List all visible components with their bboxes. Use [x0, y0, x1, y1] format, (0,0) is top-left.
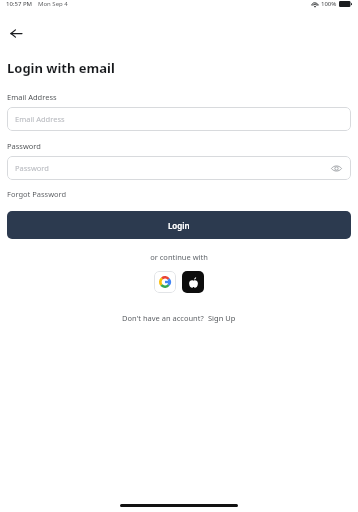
staticText: Forgot Password: [7, 189, 67, 199]
staticText: Mon Sep 4: [38, 0, 68, 8]
staticText: 100%: [321, 0, 337, 8]
staticText: Password: [7, 141, 41, 151]
button[interactable]: Login: [7, 211, 351, 239]
staticText: 10:57 PM: [6, 0, 33, 8]
button[interactable]: Email Address: [7, 107, 351, 131]
button[interactable]: Continue with Google: [154, 271, 176, 293]
button[interactable]: Forgot Password: [7, 189, 67, 199]
staticText: Login with email: [7, 59, 115, 77]
staticText: Email Address: [15, 114, 65, 124]
button[interactable]: Sign Up: [208, 313, 236, 323]
staticText: Don't have an account?: [122, 313, 204, 323]
staticText: Email Address: [7, 92, 57, 102]
staticText: Login: [168, 220, 190, 231]
button[interactable]: Continue with Apple: [182, 271, 204, 293]
staticText: Password: [15, 163, 49, 173]
staticText: or continue with: [7, 252, 351, 262]
button[interactable]: Password: [7, 156, 351, 180]
button[interactable]: Show password: [329, 161, 343, 175]
staticText: Sign Up: [208, 313, 236, 323]
button[interactable]: Back: [3, 20, 29, 46]
